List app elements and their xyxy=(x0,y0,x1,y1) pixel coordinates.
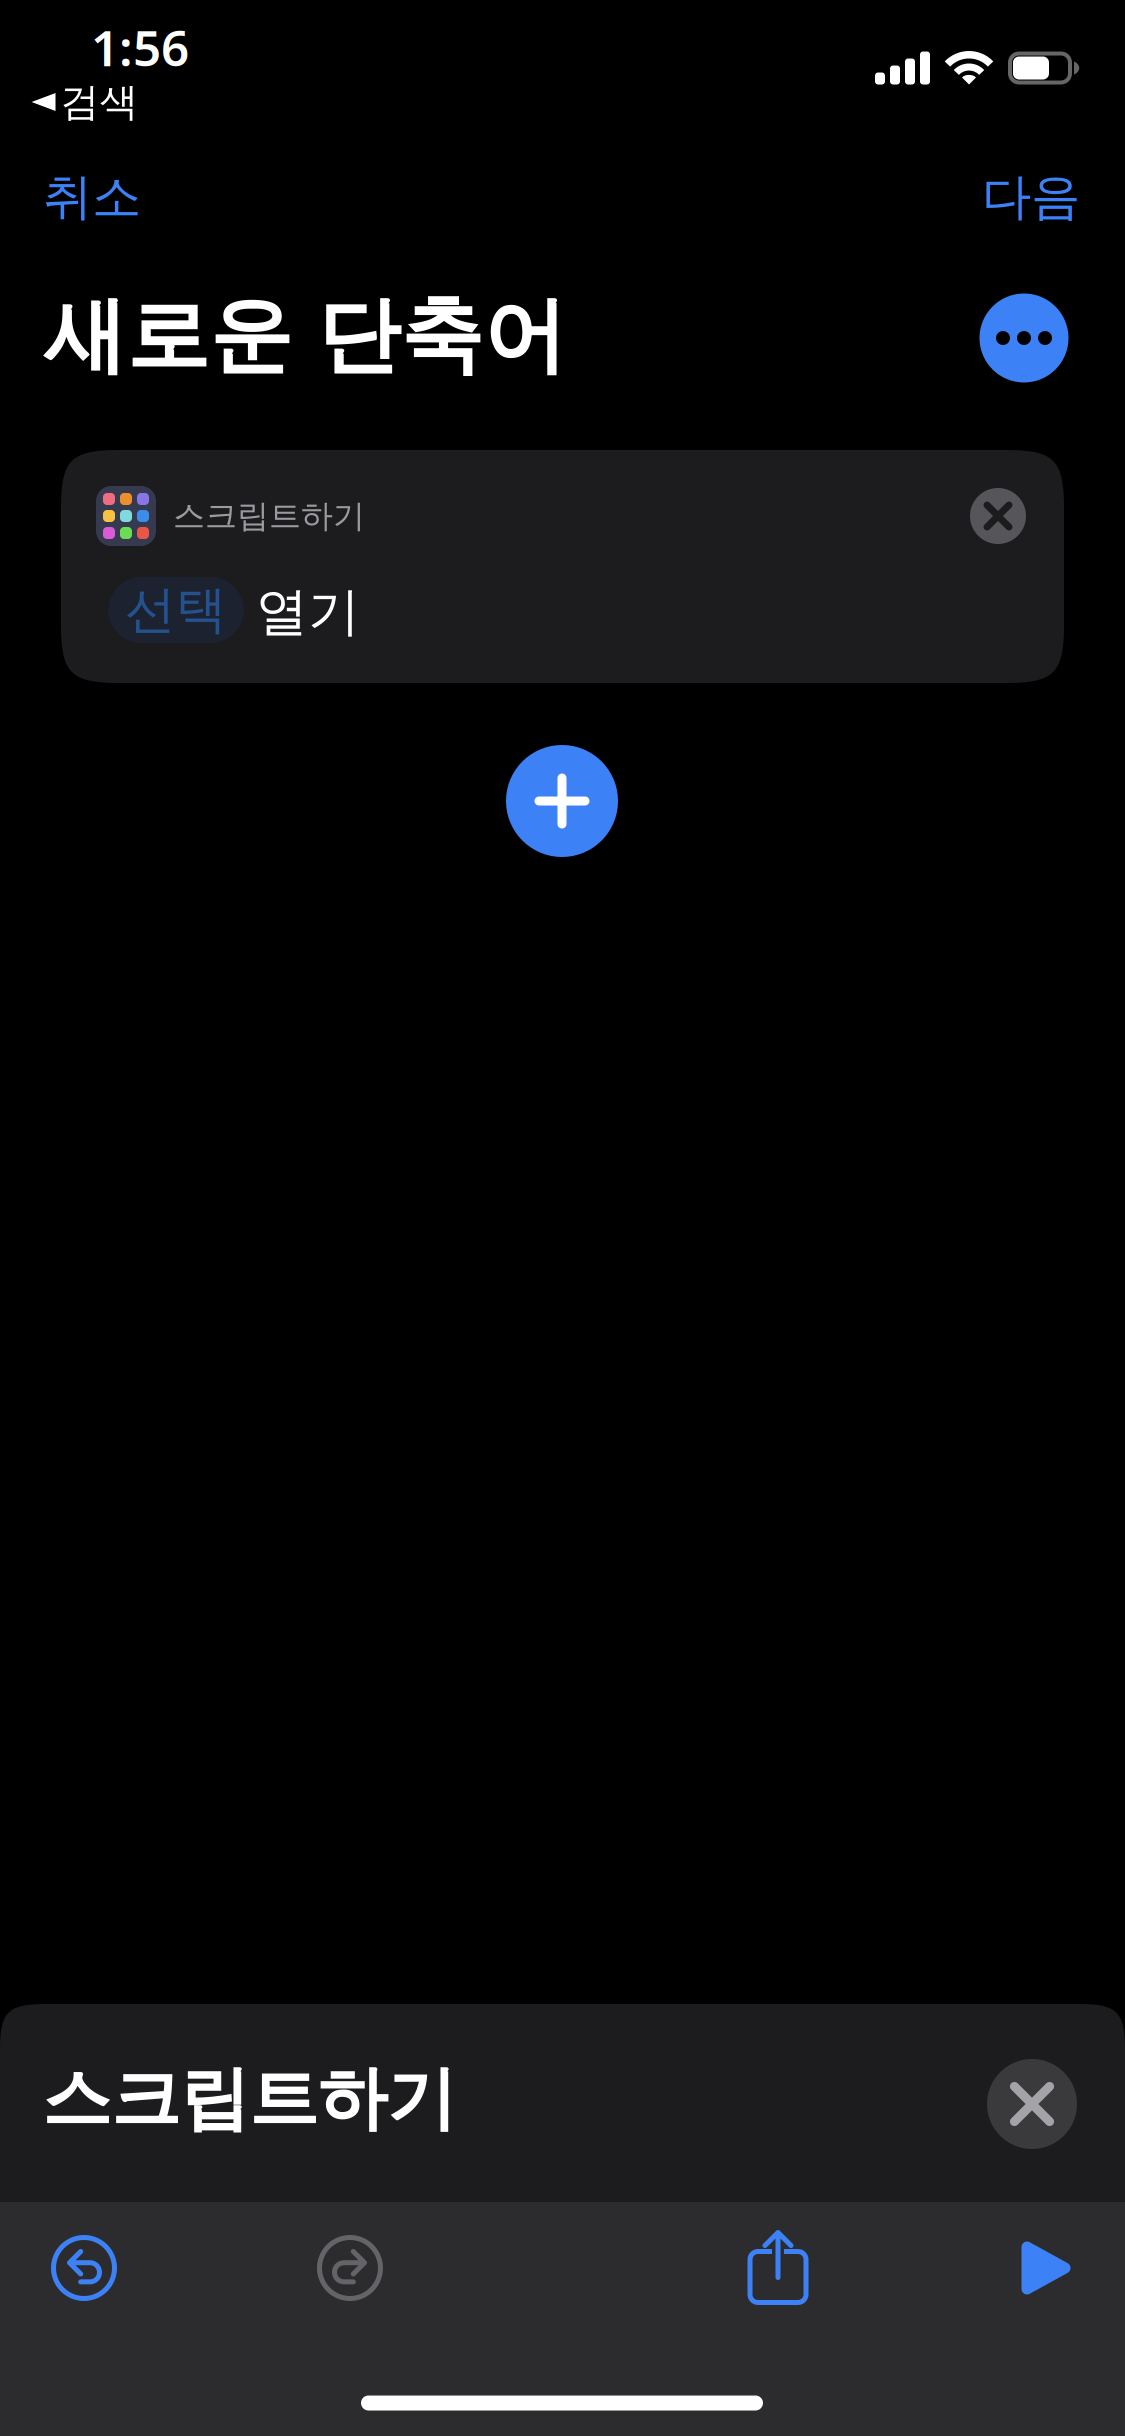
staticText: 스크립트하기 xyxy=(42,2056,456,2142)
button[interactable]: Undo xyxy=(31,2215,137,2321)
staticText: 검색 xyxy=(60,78,138,126)
staticText: 다음 xyxy=(982,167,1080,227)
button[interactable]: Run xyxy=(1002,2221,1090,2315)
button[interactable]: Close xyxy=(975,2047,1089,2161)
staticText: 새로운 단축어 xyxy=(43,285,566,387)
staticText: 1:56 xyxy=(91,14,189,80)
button[interactable]: Add action xyxy=(506,745,618,857)
button[interactable]: Redo xyxy=(297,2215,403,2321)
staticText: 스크립트하기 xyxy=(173,496,365,536)
staticText: 취소 xyxy=(43,167,141,227)
button[interactable]: Remove action xyxy=(958,476,1038,556)
staticText: 선택 xyxy=(125,579,227,641)
button[interactable]: 검색 xyxy=(0,66,169,138)
button[interactable]: More options xyxy=(979,293,1068,382)
button[interactable]: 취소 xyxy=(0,145,185,249)
staticText: 열기 xyxy=(256,580,360,644)
button[interactable]: 다음 xyxy=(938,145,1124,249)
button[interactable]: Share xyxy=(734,2213,822,2318)
